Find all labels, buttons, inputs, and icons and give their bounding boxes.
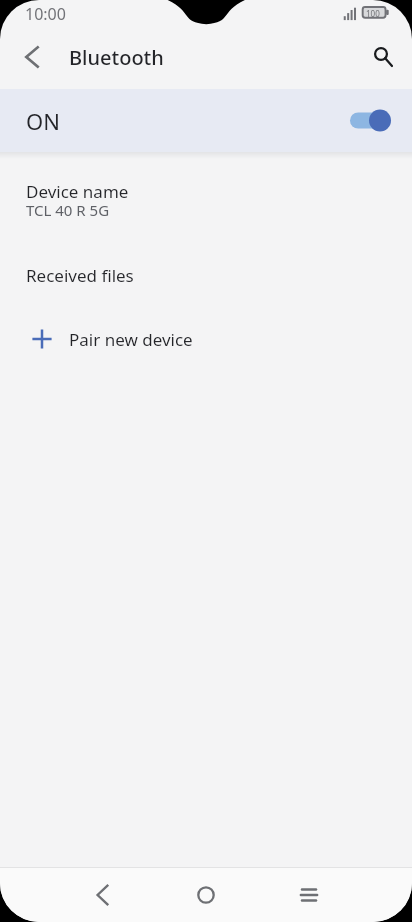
button[interactable]: Back [7,32,57,82]
staticText: 10:00 [25,3,66,25]
button[interactable]: Back [75,872,130,918]
staticText: 100 [366,8,380,19]
button[interactable]: Pair new device [0,321,412,357]
button[interactable]: Device name [0,174,412,231]
staticText: TCL 40 R 5G [26,200,110,220]
staticText: Device name [26,180,129,203]
button[interactable]: Received files [0,258,412,295]
staticText: Received files [26,264,134,287]
button[interactable]: ON [0,89,412,152]
staticText: ON [26,106,60,136]
staticText: Pair new device [69,328,193,351]
button[interactable]: Home [178,872,233,918]
button[interactable]: Search [356,32,406,82]
staticText: Bluetooth [69,44,164,71]
button[interactable]: Recent apps [281,872,336,918]
